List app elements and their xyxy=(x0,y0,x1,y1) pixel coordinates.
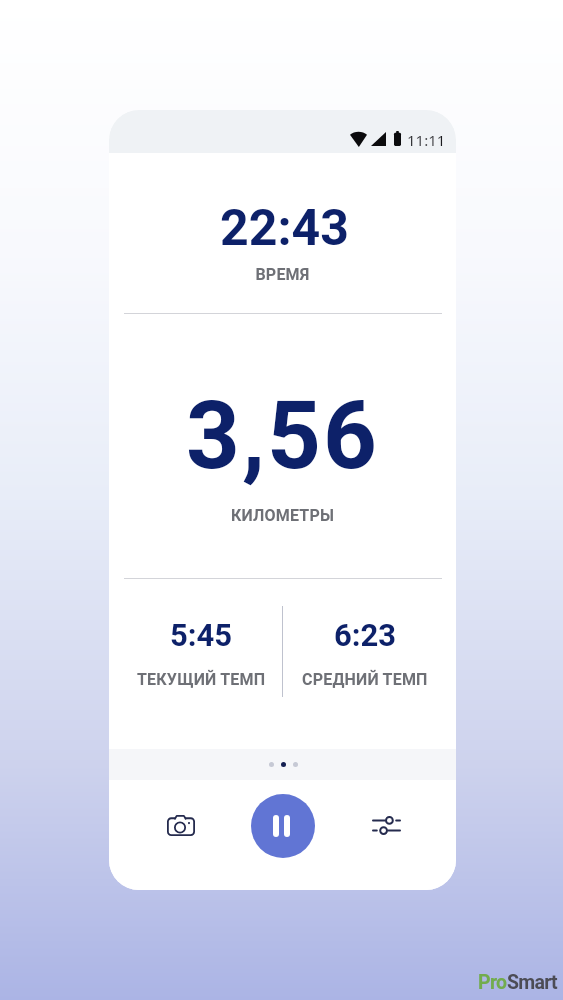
staticText: 22:43 xyxy=(111,199,456,258)
staticText: Pro xyxy=(478,971,507,994)
staticText: 11:11 xyxy=(407,130,446,150)
staticText: КИЛОМЕТРЫ xyxy=(109,506,456,525)
button[interactable]: Pause xyxy=(251,794,315,858)
button[interactable]: Settings xyxy=(360,799,412,851)
staticText: 3,56 xyxy=(109,381,456,491)
staticText: 5:45 xyxy=(170,617,233,653)
staticText: ВРЕМЯ xyxy=(109,265,456,284)
button[interactable]: Camera xyxy=(155,799,207,851)
staticText: СРЕДНИЙ ТЕМП xyxy=(302,670,428,689)
staticText: Smart xyxy=(507,971,558,994)
staticText: 6:23 xyxy=(334,617,397,653)
staticText: ТЕКУЩИЙ ТЕМП xyxy=(137,670,266,689)
